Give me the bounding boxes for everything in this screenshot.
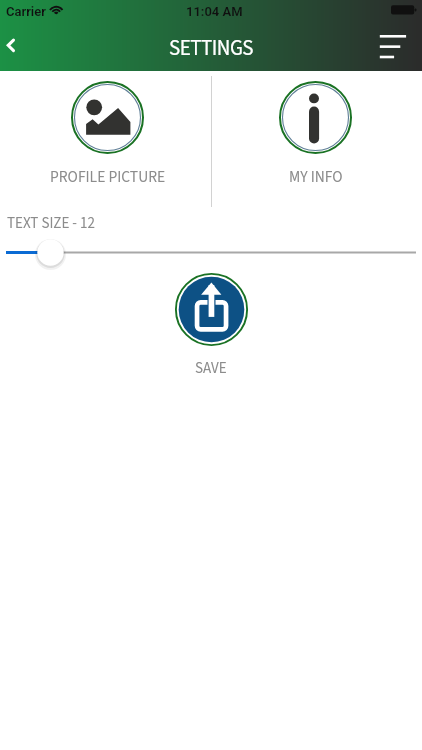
button[interactable]: SAVE [174, 272, 249, 379]
staticText: MY INFO [289, 166, 343, 188]
staticText: SETTINGS [169, 33, 254, 63]
staticText: TEXT SIZE - 12 [7, 213, 95, 234]
button[interactable]: Menu [369, 25, 417, 70]
button[interactable]: Back [0, 24, 30, 70]
staticText: PROFILE PICTURE [50, 166, 166, 188]
staticText: 11:04 AM [186, 4, 243, 19]
button[interactable]: Text size slider [0, 236, 422, 269]
staticText: SAVE [195, 358, 227, 379]
staticText: Carrier [6, 4, 46, 19]
button[interactable]: MY INFO [245, 80, 386, 188]
button[interactable]: PROFILE PICTURE [37, 80, 178, 188]
